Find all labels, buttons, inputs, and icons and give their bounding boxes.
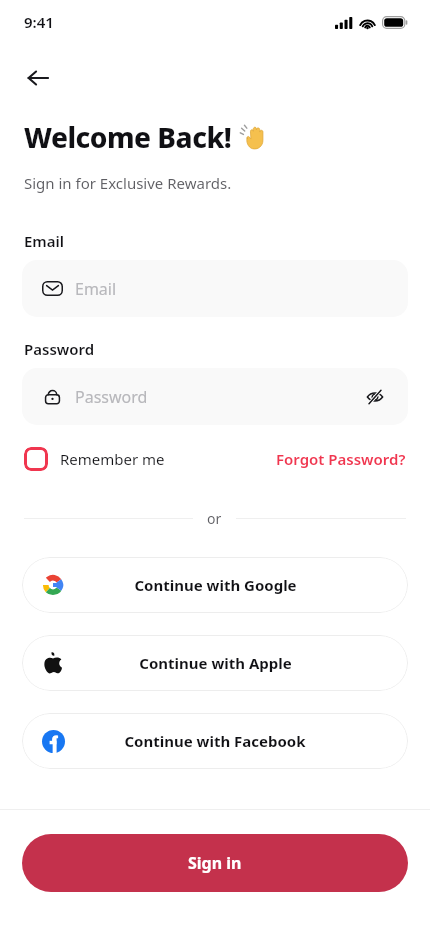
staticText: or [207, 509, 222, 528]
button[interactable]: Back [18, 58, 58, 98]
button[interactable]: Forgot Password? [276, 449, 406, 469]
staticText: Welcome Back! [24, 118, 239, 156]
button[interactable]: Password [22, 368, 408, 425]
staticText: Password [75, 386, 148, 408]
button[interactable]: Email [22, 260, 408, 317]
button[interactable]: Show password [362, 384, 388, 410]
button[interactable]: Remember me [24, 447, 165, 471]
staticText: 9:41 [24, 12, 54, 32]
staticText: Forgot Password? [276, 449, 406, 469]
button[interactable]: Continue with Facebook [22, 713, 408, 769]
staticText: Continue with Facebook [124, 731, 306, 751]
staticText: Sign in [188, 852, 242, 874]
button[interactable]: Continue with Google [22, 557, 408, 613]
staticText: Continue with Google [134, 575, 297, 595]
staticText: Email [24, 231, 65, 251]
staticText: Email [75, 278, 117, 300]
staticText: Continue with Apple [139, 653, 292, 673]
staticText: Remember me [60, 449, 165, 469]
staticText: Password [24, 339, 95, 359]
button[interactable]: Continue with Apple [22, 635, 408, 691]
staticText: Sign in for Exclusive Rewards. [24, 173, 232, 193]
button[interactable]: Sign in [22, 834, 408, 892]
